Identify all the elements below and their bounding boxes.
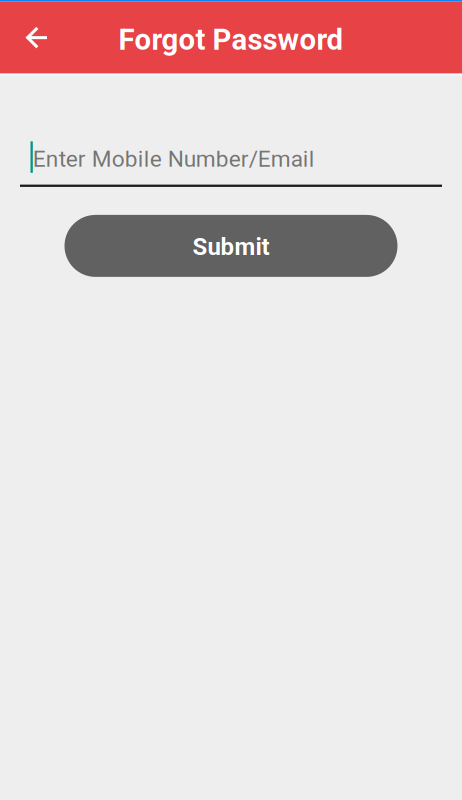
button[interactable]: Enter Mobile Number/Email — [20, 141, 442, 187]
staticText: Forgot Password — [118, 22, 343, 57]
button[interactable]: Back — [0, 2, 47, 74]
button[interactable]: Submit — [64, 215, 397, 277]
staticText: Submit — [192, 233, 269, 261]
staticText: Enter Mobile Number/Email — [33, 146, 315, 172]
